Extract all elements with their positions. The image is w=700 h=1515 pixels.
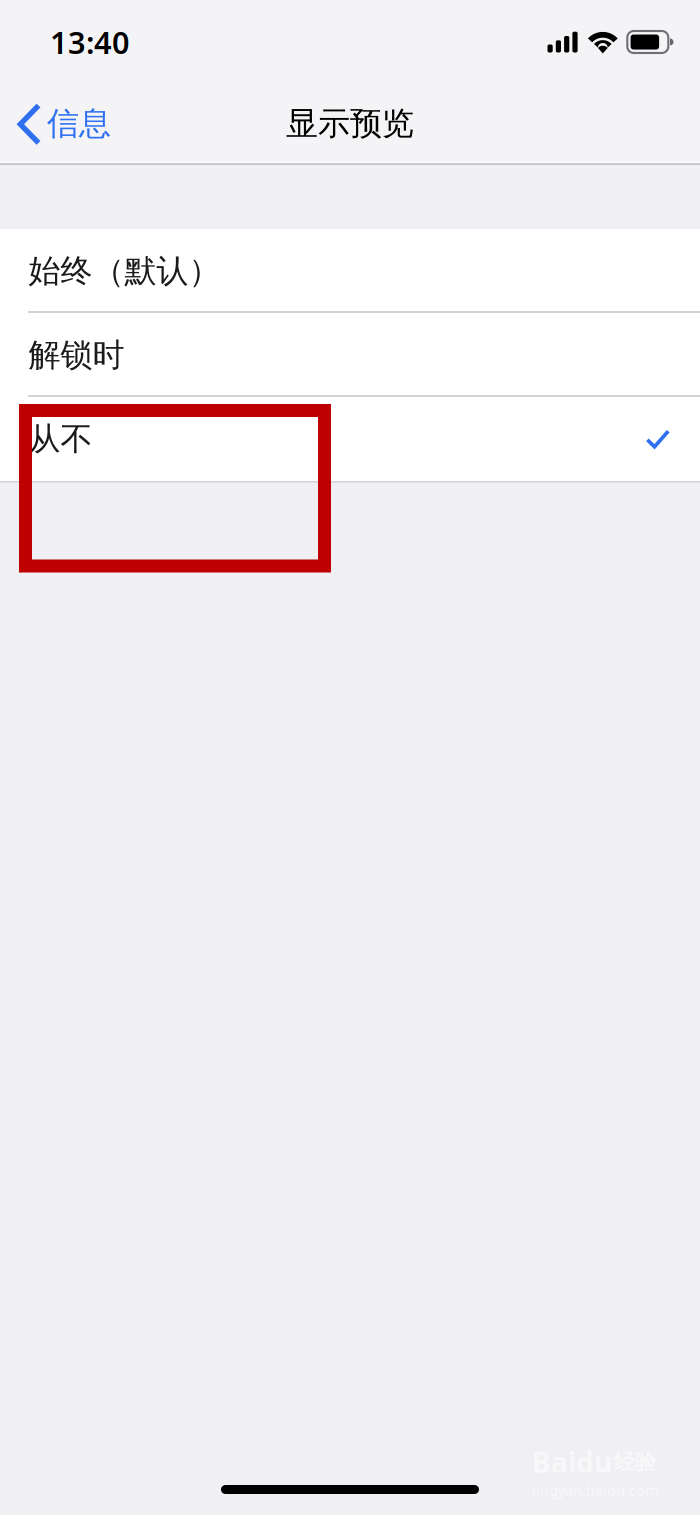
staticText: 始终（默认）	[28, 251, 220, 291]
button[interactable]: 解锁时	[0, 313, 700, 397]
staticText: 显示预览	[286, 104, 414, 143]
staticText: 13:40	[50, 22, 130, 62]
button[interactable]: 始终（默认）	[0, 229, 700, 313]
staticText: 解锁时	[28, 335, 124, 375]
staticText: 从不	[28, 419, 92, 459]
staticText: 信息	[47, 104, 111, 143]
staticText: 经验	[614, 1449, 656, 1475]
staticText: Baidu	[532, 1443, 612, 1481]
button[interactable]: 从不	[0, 397, 700, 481]
button[interactable]: 返回信息	[0, 85, 123, 161]
